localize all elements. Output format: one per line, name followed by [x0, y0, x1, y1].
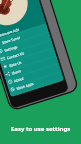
staticText: Settings — [4, 44, 19, 53]
staticText: Contact Us — [6, 50, 25, 60]
button[interactable]: More Apps — [7, 70, 63, 94]
staticText: More Apps — [16, 81, 34, 91]
button[interactable]: Store Tuner — [0, 24, 49, 49]
button[interactable]: Easy to use settings — [11, 125, 71, 133]
button[interactable]: Rate Us — [0, 47, 56, 71]
staticText: Store Tuner — [1, 34, 22, 45]
button[interactable]: Remove Ads — [0, 16, 46, 41]
staticText: Rate Us — [8, 59, 22, 68]
staticText: Share — [11, 68, 22, 76]
button[interactable]: About — [5, 62, 61, 87]
staticText: Easy to use settings — [11, 125, 71, 133]
staticText: About — [13, 76, 24, 83]
button[interactable]: Settings — [0, 32, 51, 56]
button[interactable]: Contact Us — [0, 39, 54, 64]
button[interactable]: Share — [3, 55, 58, 79]
staticText: Remove Ads — [0, 26, 20, 38]
